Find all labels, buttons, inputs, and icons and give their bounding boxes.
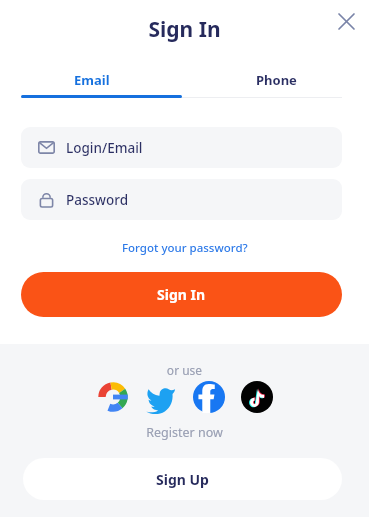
button[interactable]: Password: [21, 179, 342, 220]
button[interactable]: Login/Email: [21, 127, 342, 168]
staticText: Phone: [256, 71, 297, 89]
staticText: Login/Email: [66, 139, 143, 157]
staticText: Sign Up: [156, 470, 209, 489]
button[interactable]: Close: [331, 6, 361, 36]
staticText: Register now: [0, 424, 369, 441]
button[interactable]: Sign In: [21, 272, 342, 317]
staticText: or use: [0, 362, 369, 378]
staticText: Email: [74, 71, 110, 89]
button[interactable]: Forgot your password?: [118, 236, 252, 260]
staticText: Sign In: [157, 285, 206, 304]
staticText: Password: [66, 191, 129, 209]
button[interactable]: Sign in with TikTok: [241, 381, 273, 413]
button[interactable]: Sign Up: [23, 458, 342, 500]
button[interactable]: Phone: [184, 64, 369, 96]
button[interactable]: Email: [0, 64, 184, 96]
button[interactable]: Sign in with Facebook: [193, 381, 225, 413]
button[interactable]: Sign in with Twitter: [145, 381, 177, 413]
staticText: Sign In: [0, 15, 369, 44]
button[interactable]: Sign in with Google: [97, 381, 129, 413]
staticText: Forgot your password?: [122, 240, 248, 256]
